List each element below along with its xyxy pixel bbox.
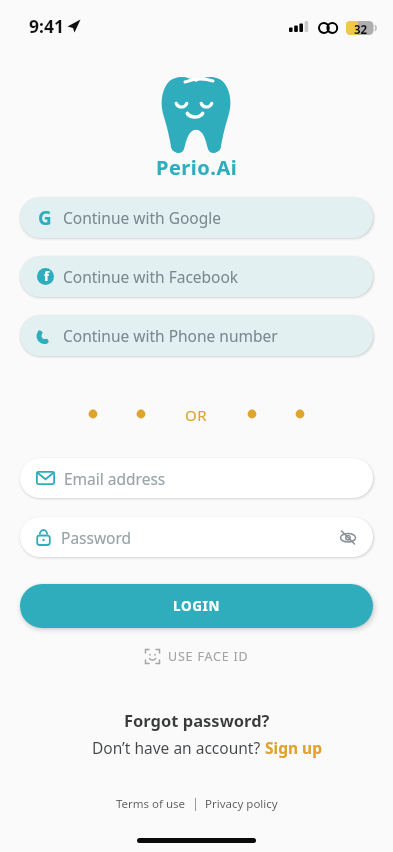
staticText: G bbox=[38, 205, 52, 231]
button[interactable]: Forgot password? bbox=[124, 709, 270, 731]
button[interactable]: Email address bbox=[20, 458, 373, 498]
staticText: Privacy policy bbox=[205, 796, 278, 812]
button[interactable]: f bbox=[20, 256, 373, 297]
button[interactable]: LOGIN bbox=[20, 584, 373, 628]
staticText: Continue with Phone number bbox=[63, 325, 278, 346]
staticText: USE FACE ID bbox=[168, 648, 249, 665]
staticText: Sign up bbox=[265, 737, 322, 758]
button[interactable]: Terms of use bbox=[116, 796, 186, 812]
button[interactable]: Privacy policy bbox=[205, 796, 278, 812]
staticText: OR bbox=[185, 405, 208, 425]
staticText: Continue with Google bbox=[63, 207, 221, 228]
button[interactable]: USE FACE ID bbox=[0, 647, 393, 665]
staticText: Forgot password? bbox=[124, 709, 270, 731]
staticText: 9:41 bbox=[29, 14, 64, 38]
staticText: LOGIN bbox=[173, 597, 220, 615]
staticText: Continue with Facebook bbox=[63, 266, 239, 287]
staticText: Don’t have an account? bbox=[92, 737, 265, 758]
staticText: Password bbox=[61, 527, 132, 548]
button[interactable]: G bbox=[20, 197, 373, 238]
staticText: f bbox=[44, 268, 50, 284]
button[interactable]: Password bbox=[20, 517, 373, 557]
staticText: 32 bbox=[354, 22, 368, 36]
staticText: Terms of use bbox=[116, 796, 186, 812]
staticText: Perio.Ai bbox=[156, 154, 238, 181]
staticText: Email address bbox=[64, 468, 166, 489]
button[interactable]: Continue with Phone number bbox=[20, 315, 373, 356]
button[interactable]: Sign up bbox=[265, 737, 322, 758]
